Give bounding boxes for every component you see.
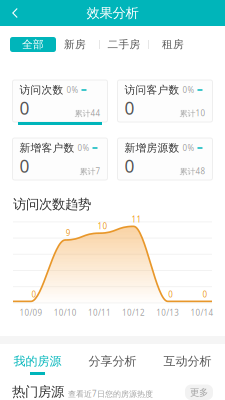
staticText: 0: [31, 289, 36, 300]
staticText: 累计44: [74, 108, 100, 118]
staticText: 租房: [162, 38, 184, 51]
staticText: 新增客户数: [19, 141, 74, 154]
staticText: 访问次数: [19, 83, 63, 96]
staticText: 访问客户数: [124, 83, 179, 96]
staticText: 我的房源: [13, 354, 61, 369]
staticText: 0%: [66, 85, 78, 95]
staticText: 互动分析: [163, 354, 211, 369]
staticText: 累计10: [179, 108, 205, 118]
button[interactable]: 新房: [53, 37, 97, 52]
button[interactable]: 访问次数: [12, 80, 107, 125]
staticText: 11: [132, 214, 142, 225]
button[interactable]: 新增客户数: [12, 138, 107, 183]
staticText: 0: [19, 96, 29, 119]
staticText: 0: [168, 289, 173, 300]
staticText: 访问次数趋势: [13, 196, 91, 212]
staticText: 0: [202, 289, 207, 300]
staticText: 0%: [182, 85, 194, 95]
staticText: 全部: [22, 38, 44, 51]
staticText: 累计48: [179, 166, 205, 176]
staticText: 0: [19, 154, 29, 177]
button[interactable]: 全部: [10, 37, 56, 52]
staticText: 查看近7日您的房源热度: [68, 388, 153, 399]
staticText: 10/09: [19, 307, 42, 318]
staticText: 累计7: [79, 166, 100, 176]
staticText: 10/14: [190, 307, 213, 318]
staticText: 热门房源: [12, 384, 64, 400]
staticText: 10/10: [54, 307, 77, 318]
button[interactable]: Back: [0, 0, 27, 25]
staticText: 0: [124, 96, 134, 119]
staticText: 10/11: [88, 307, 111, 318]
staticText: 新增房源数: [124, 141, 179, 154]
staticText: 10: [97, 221, 107, 231]
button[interactable]: 新增房源数: [117, 138, 212, 183]
staticText: 分享分析: [88, 354, 136, 369]
staticText: 10/13: [156, 307, 179, 318]
button[interactable]: 互动分析: [150, 344, 225, 376]
staticText: 更多: [190, 386, 208, 398]
button[interactable]: 我的房源: [0, 344, 75, 376]
staticText: 新房: [64, 38, 86, 51]
staticText: 10/12: [122, 307, 145, 318]
staticText: 9: [66, 228, 71, 238]
button[interactable]: 分享分析: [75, 344, 150, 376]
staticText: 0%: [77, 143, 89, 153]
button[interactable]: 访问客户数: [117, 80, 212, 125]
staticText: 二手房: [107, 38, 140, 51]
button[interactable]: 更多: [185, 384, 213, 400]
staticText: 效果分析: [86, 5, 138, 21]
button[interactable]: 二手房: [102, 37, 146, 52]
staticText: 0%: [182, 143, 194, 153]
staticText: 0: [124, 154, 134, 177]
button[interactable]: 租房: [151, 37, 195, 52]
